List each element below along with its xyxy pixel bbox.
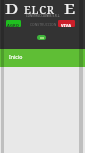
staticText: ELCR (24, 2, 55, 17)
staticText: CONSTRUCCIONES S.R.L. (26, 14, 61, 18)
button[interactable]: VIVA (58, 20, 75, 27)
button[interactable]: AGRO (6, 20, 21, 27)
staticText: D (5, 0, 18, 18)
button[interactable]: Menu (37, 35, 46, 40)
button[interactable]: Inicio (0, 49, 85, 67)
staticText: AGRO (7, 23, 20, 27)
staticText: Inicio (9, 53, 23, 60)
staticText: CONSTRUCCION (30, 22, 57, 27)
staticText: E (64, 0, 76, 18)
staticText: VIVA (61, 23, 72, 27)
